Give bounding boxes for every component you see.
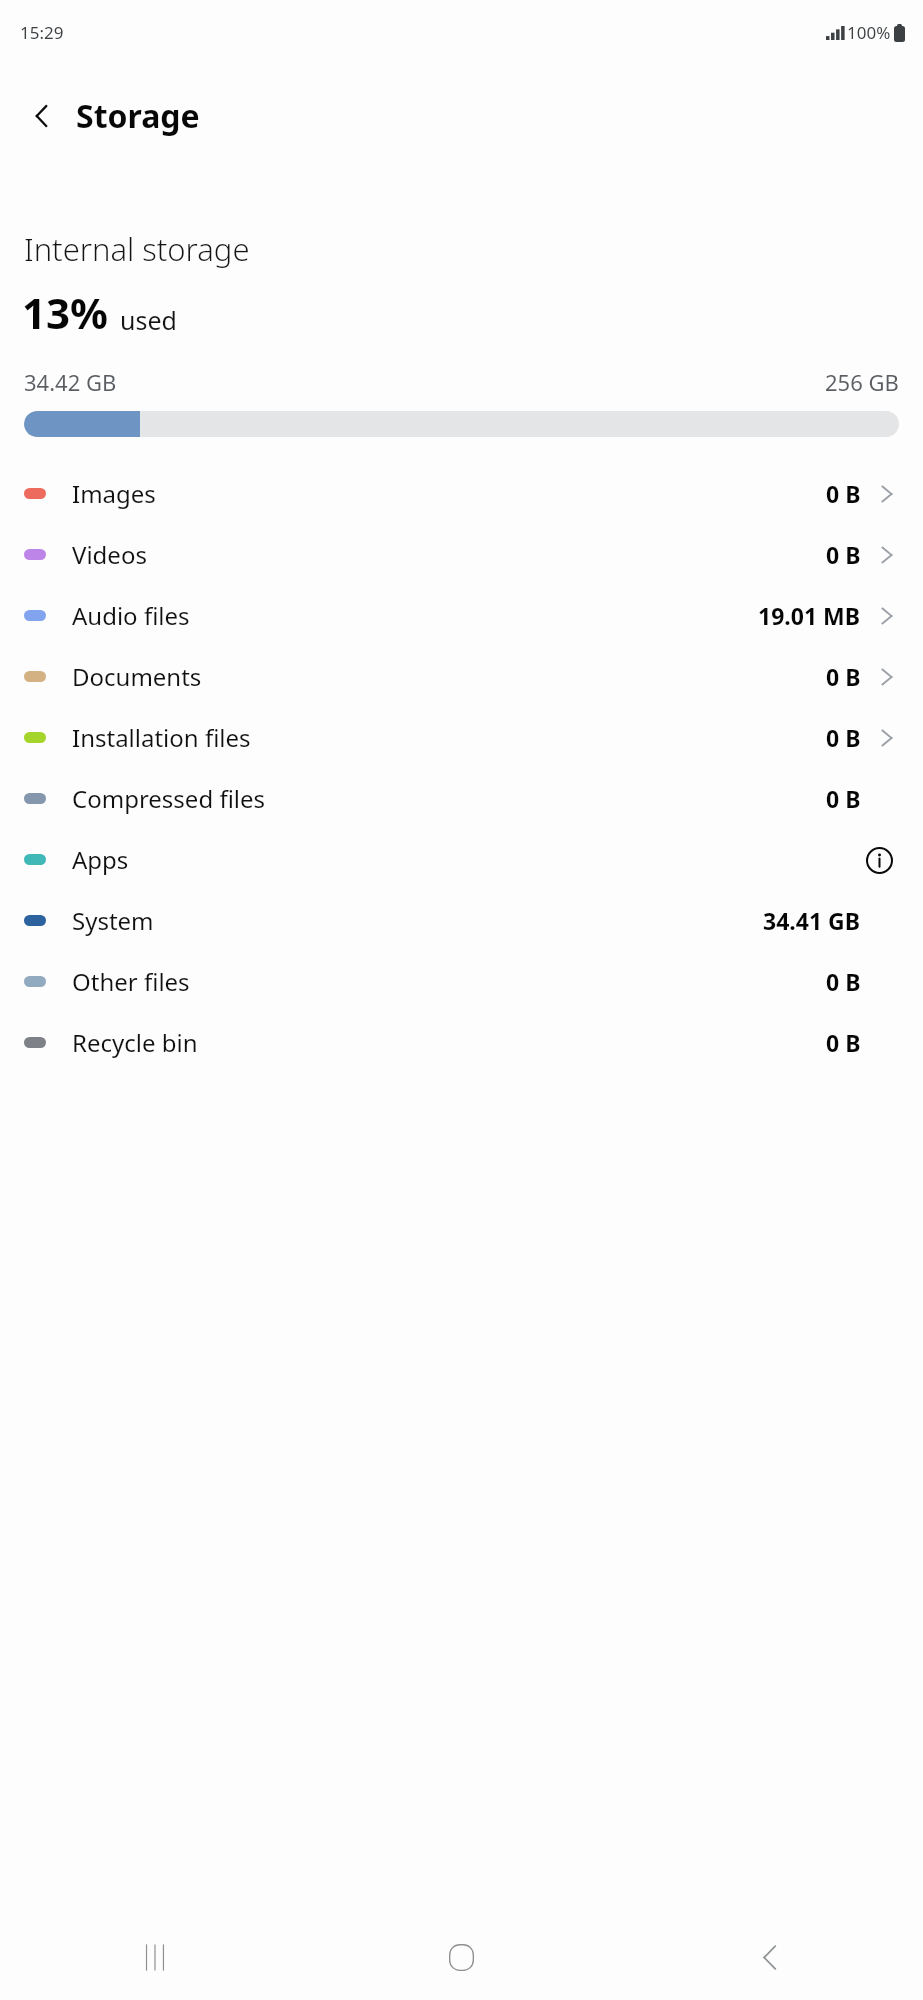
- staticText: 100%: [847, 21, 891, 44]
- staticText: 0 B: [826, 1027, 861, 1058]
- staticText: Storage: [76, 94, 200, 138]
- staticText: 256 GB: [825, 367, 899, 397]
- staticText: Documents: [72, 660, 202, 693]
- button[interactable]: Installation files: [0, 707, 923, 768]
- staticText: Images: [72, 477, 156, 510]
- button[interactable]: Other files: [0, 951, 923, 1012]
- button[interactable]: Apps: [0, 829, 923, 890]
- staticText: Recycle bin: [72, 1026, 198, 1059]
- staticText: 0 B: [826, 539, 861, 570]
- staticText: 0 B: [826, 722, 861, 753]
- button[interactable]: Recent apps: [0, 1914, 307, 2000]
- staticText: 0 B: [826, 966, 861, 997]
- staticText: 0 B: [826, 783, 861, 814]
- button[interactable]: Images: [0, 463, 923, 524]
- button[interactable]: Back: [16, 90, 68, 142]
- staticText: Apps: [72, 843, 129, 876]
- button[interactable]: Home: [307, 1914, 615, 2000]
- button[interactable]: Compressed files: [0, 768, 923, 829]
- staticText: Audio files: [72, 599, 190, 632]
- staticText: 34.41 GB: [763, 905, 861, 936]
- button[interactable]: Recycle bin: [0, 1012, 923, 1073]
- button[interactable]: Videos: [0, 524, 923, 585]
- staticText: used: [120, 303, 177, 337]
- staticText: Installation files: [72, 721, 251, 754]
- staticText: 0 B: [826, 478, 861, 509]
- staticText: Other files: [72, 965, 190, 998]
- staticText: 19.01 MB: [758, 600, 861, 631]
- button[interactable]: Audio files: [0, 585, 923, 646]
- staticText: 0 B: [826, 661, 861, 692]
- button[interactable]: Documents: [0, 646, 923, 707]
- staticText: Compressed files: [72, 782, 266, 815]
- staticText: System: [72, 904, 154, 937]
- staticText: 34.42 GB: [24, 367, 117, 397]
- staticText: 13%: [22, 284, 108, 341]
- staticText: Internal storage: [24, 228, 250, 270]
- staticText: 15:29: [20, 21, 64, 44]
- staticText: Videos: [72, 538, 147, 571]
- button[interactable]: Back: [615, 1914, 923, 2000]
- button[interactable]: Apps info: [859, 840, 899, 880]
- button[interactable]: System: [0, 890, 923, 951]
